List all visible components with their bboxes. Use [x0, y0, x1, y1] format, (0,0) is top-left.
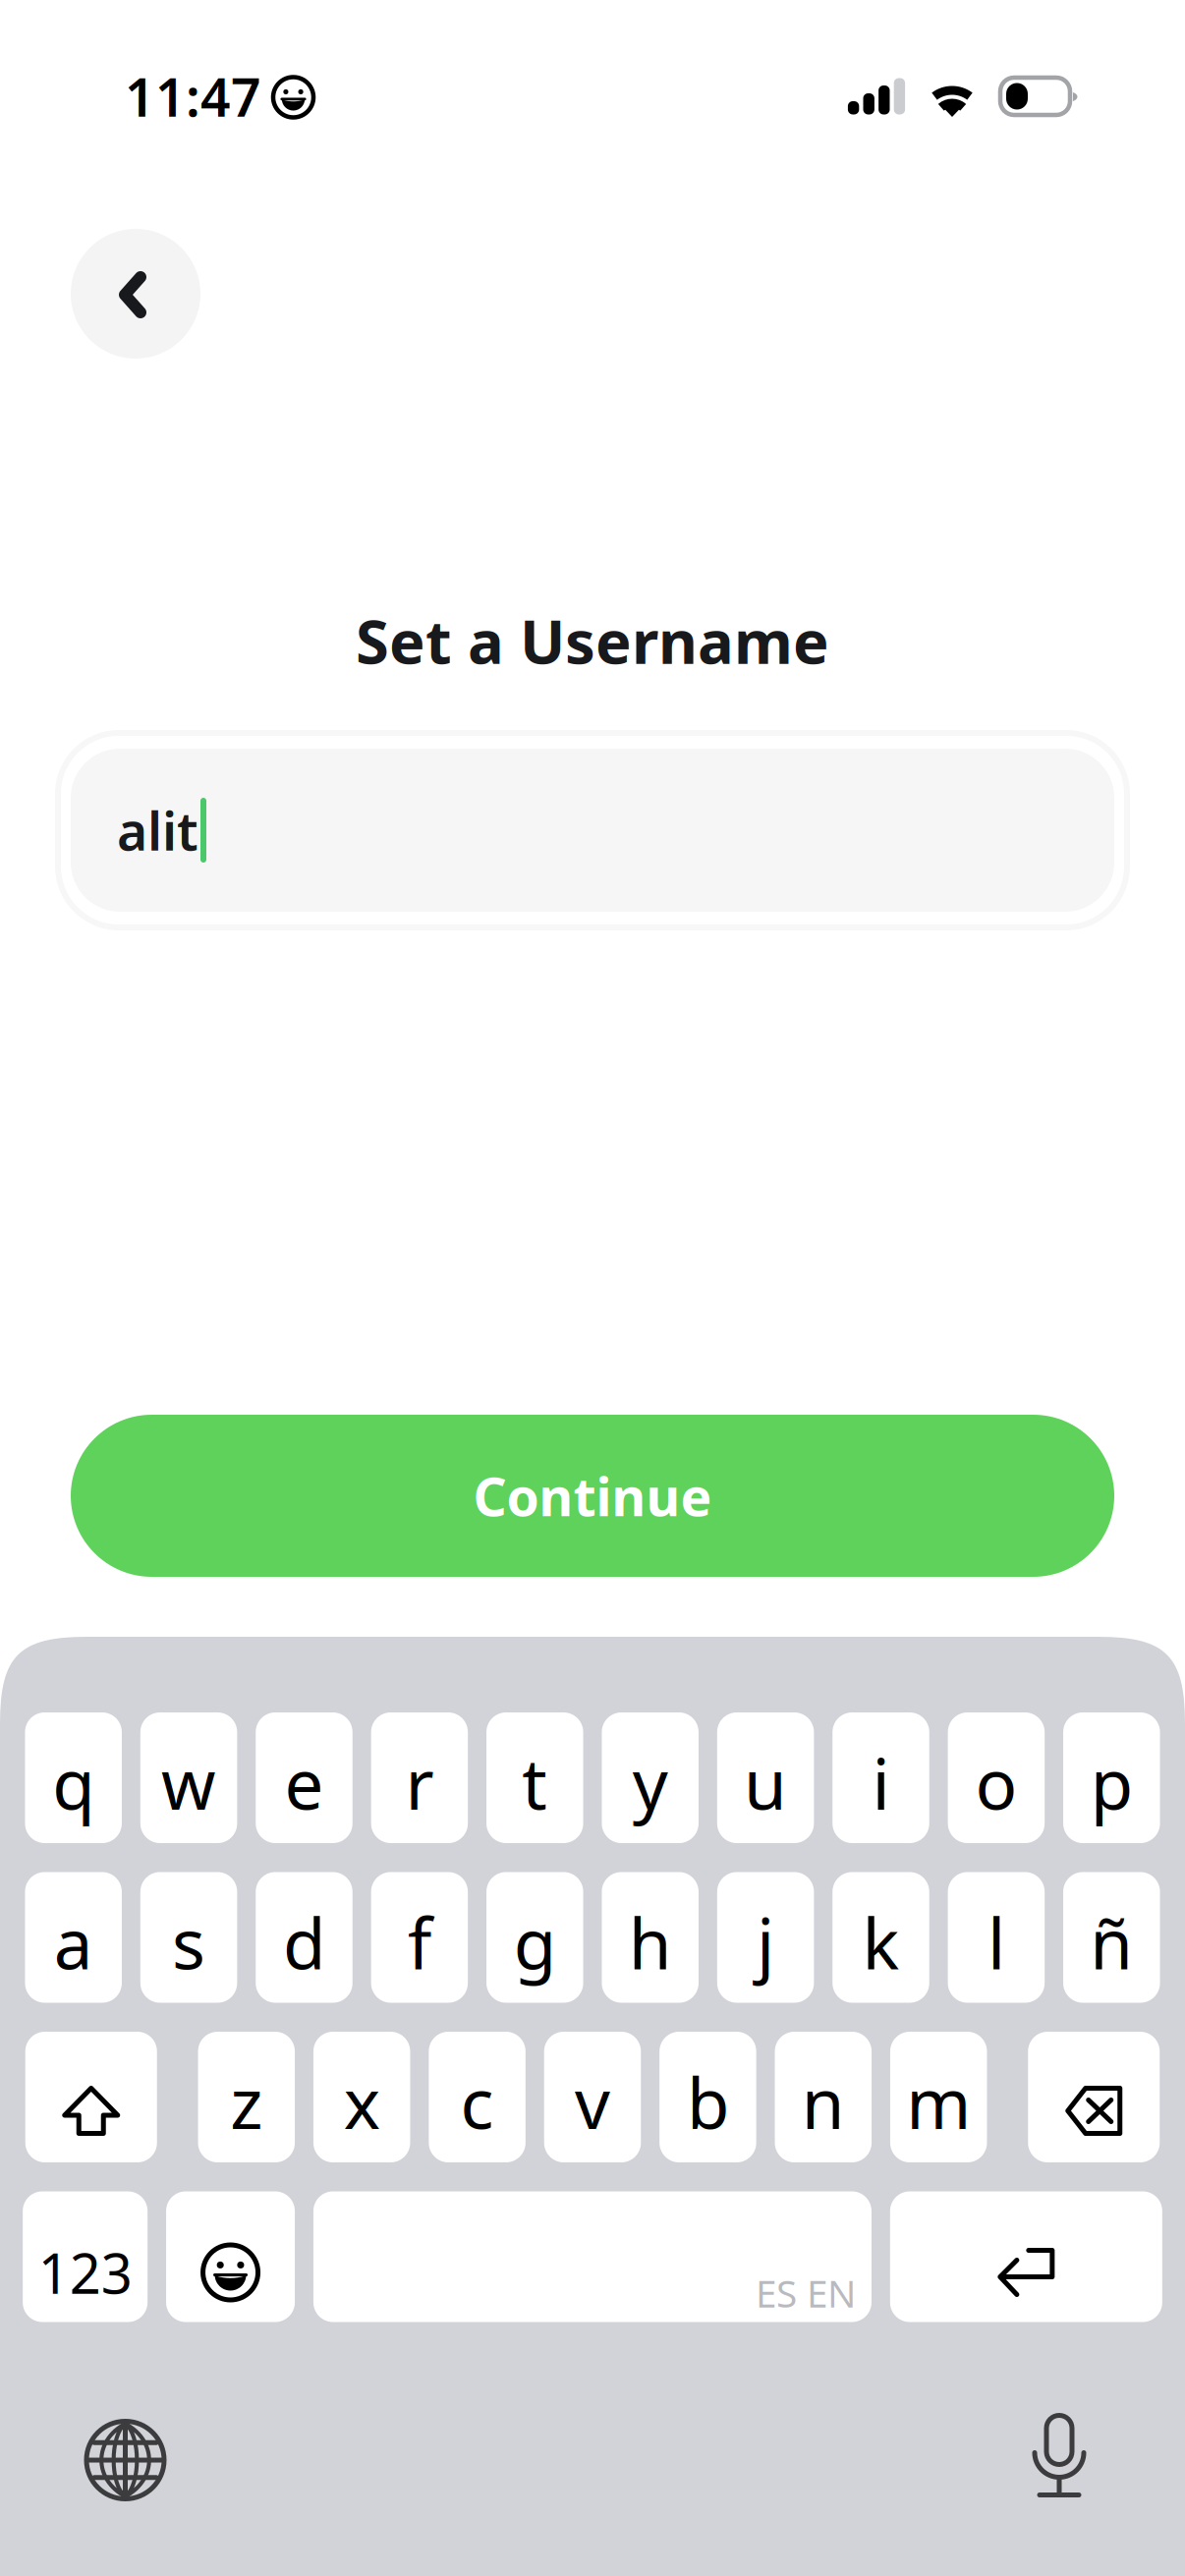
button[interactable]: z	[198, 2032, 295, 2162]
button[interactable]: l	[948, 1872, 1045, 2003]
staticText: u	[744, 1737, 787, 1829]
staticText: p	[1090, 1737, 1133, 1829]
staticText: f	[408, 1896, 431, 1988]
button[interactable]: Delete	[1028, 2032, 1160, 2162]
staticText: q	[52, 1737, 95, 1829]
button[interactable]: w	[140, 1712, 237, 1843]
staticText: a	[54, 1896, 93, 1988]
button[interactable]: v	[544, 2032, 641, 2162]
staticText: w	[161, 1737, 216, 1829]
button[interactable]: t	[486, 1712, 583, 1843]
staticText: s	[172, 1896, 205, 1988]
button[interactable]: m	[890, 2032, 987, 2162]
button[interactable]: Username	[58, 733, 1127, 927]
staticText: d	[283, 1896, 325, 1988]
button[interactable]: x	[313, 2032, 410, 2162]
button[interactable]: h	[602, 1872, 699, 2003]
staticText: ES EN	[756, 2268, 856, 2318]
button[interactable]: d	[256, 1872, 353, 2003]
staticText: ñ	[1090, 1896, 1133, 1988]
button[interactable]: o	[948, 1712, 1045, 1843]
button[interactable]: Return	[890, 2191, 1162, 2322]
button[interactable]: Next keyboard	[86, 2415, 164, 2493]
staticText: h	[629, 1896, 672, 1988]
staticText: e	[284, 1737, 324, 1829]
button[interactable]: Emoji	[166, 2191, 295, 2322]
button[interactable]: Back	[71, 229, 200, 359]
staticText: alit	[117, 795, 198, 865]
button[interactable]: s	[140, 1872, 237, 2003]
staticText: v	[575, 2056, 610, 2148]
button[interactable]: b	[660, 2032, 756, 2162]
button[interactable]: 123	[23, 2191, 147, 2322]
button[interactable]: k	[832, 1872, 929, 2003]
button[interactable]: i	[832, 1712, 929, 1843]
staticText: y	[632, 1737, 668, 1829]
button[interactable]: c	[429, 2032, 526, 2162]
button[interactable]: f	[371, 1872, 468, 2003]
staticText: j	[757, 1896, 774, 1988]
staticText: i	[872, 1737, 890, 1829]
staticText: x	[344, 2056, 380, 2148]
button[interactable]: n	[775, 2032, 872, 2162]
staticText: r	[405, 1737, 434, 1829]
button[interactable]: q	[25, 1712, 122, 1843]
staticText: g	[514, 1896, 556, 1988]
staticText: 11:47	[125, 62, 261, 131]
button[interactable]: a	[25, 1872, 122, 2003]
staticText: t	[522, 1737, 548, 1829]
button[interactable]: u	[717, 1712, 814, 1843]
button[interactable]: Space	[313, 2191, 871, 2322]
button[interactable]: y	[602, 1712, 699, 1843]
button[interactable]: g	[486, 1872, 583, 2003]
staticText: l	[987, 1896, 1005, 1988]
staticText: Set a Username	[356, 601, 829, 681]
staticText: 123	[38, 2236, 132, 2309]
staticText: c	[460, 2056, 494, 2148]
staticText: n	[802, 2056, 845, 2148]
button[interactable]: Dictation	[1032, 2412, 1087, 2496]
staticText: k	[862, 1896, 900, 1988]
button[interactable]: j	[717, 1872, 814, 2003]
button[interactable]: Shift	[25, 2032, 157, 2162]
staticText: b	[687, 2056, 729, 2148]
button[interactable]: Continue	[71, 1415, 1114, 1577]
staticText: o	[975, 1737, 1017, 1829]
button[interactable]: ñ	[1063, 1872, 1160, 2003]
staticText: z	[230, 2056, 263, 2148]
staticText: m	[906, 2056, 971, 2148]
button[interactable]: e	[256, 1712, 353, 1843]
button[interactable]: p	[1063, 1712, 1160, 1843]
staticText: Continue	[473, 1461, 712, 1531]
button[interactable]: r	[371, 1712, 468, 1843]
